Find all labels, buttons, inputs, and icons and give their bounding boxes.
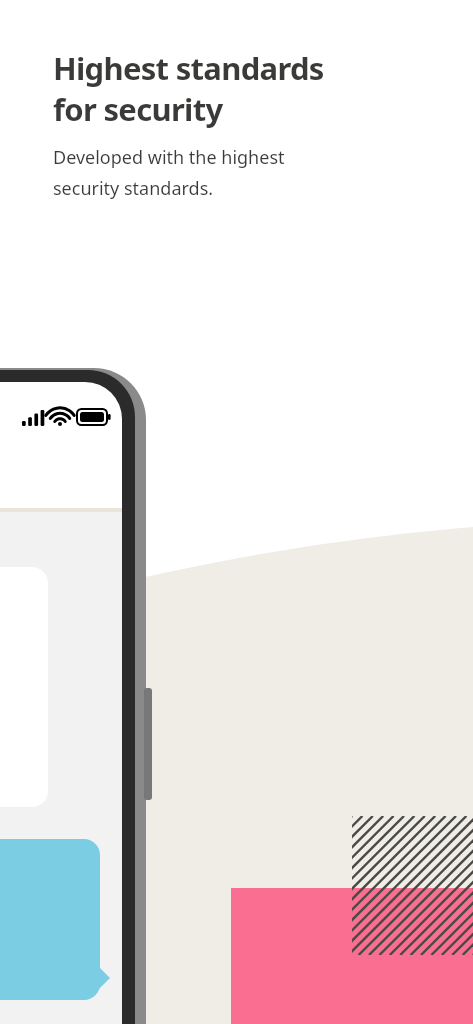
staticText: Developed with the highest security stan… bbox=[53, 145, 285, 201]
button[interactable]: Secure messaging illustration bbox=[0, 0, 473, 1024]
staticText: Highest standards for security bbox=[53, 47, 324, 130]
